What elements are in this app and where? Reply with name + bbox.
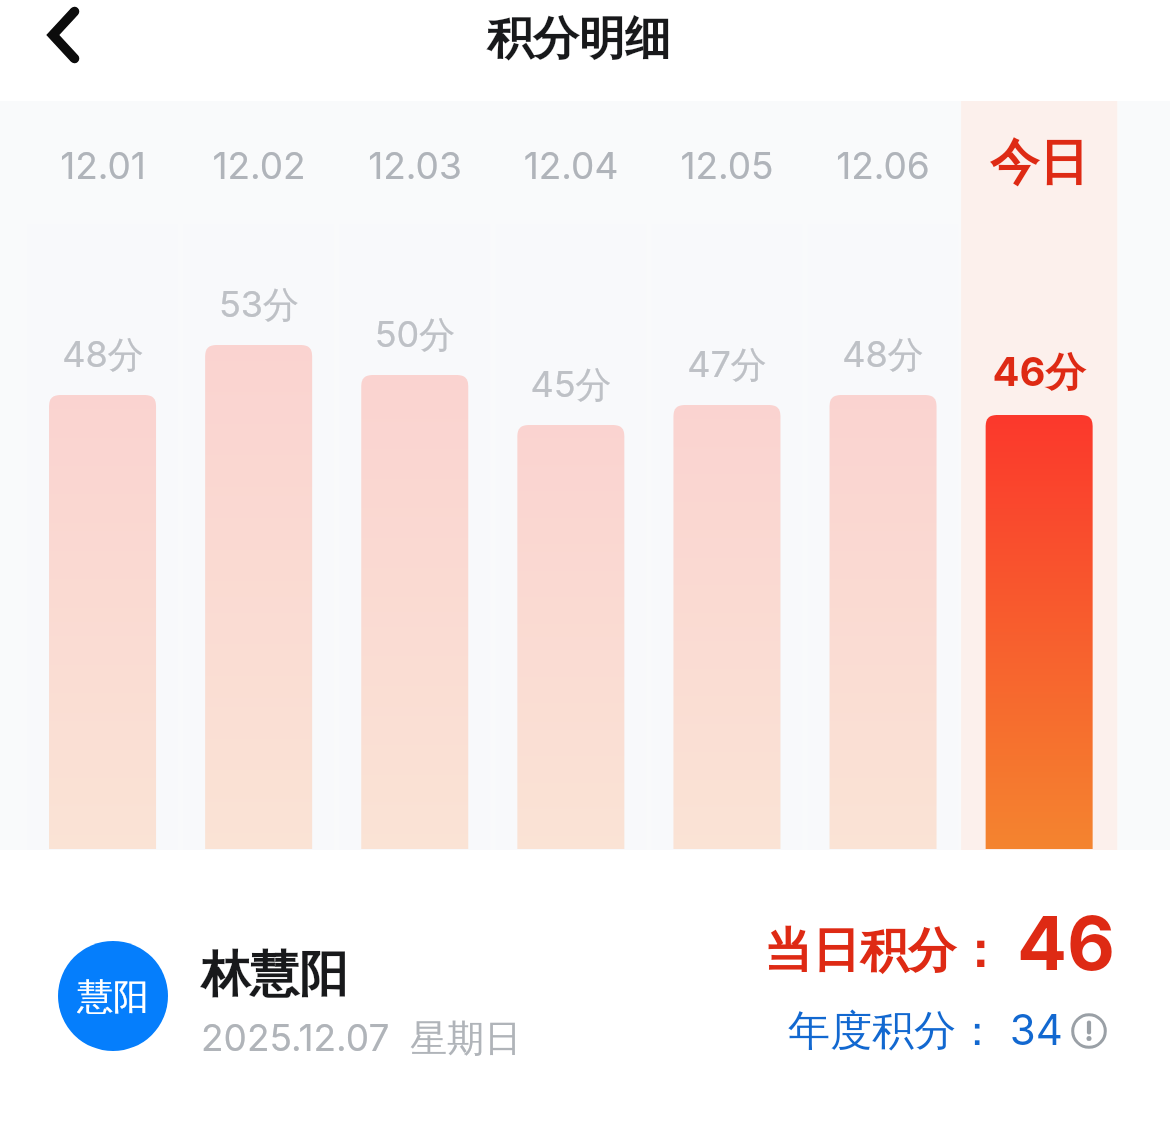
button[interactable]: 慧阳 bbox=[58, 941, 168, 1051]
button[interactable]: 12.02 53分 bbox=[181, 101, 337, 850]
staticText: 2025.12.07 星期日 bbox=[201, 1015, 522, 1062]
staticText: 46分 bbox=[961, 347, 1117, 398]
button[interactable]: 12.03 50分 bbox=[337, 101, 493, 850]
staticText: 慧阳 bbox=[77, 974, 149, 1019]
button[interactable]: 12.04 45分 bbox=[493, 101, 649, 850]
button[interactable]: Back bbox=[18, 0, 108, 70]
button[interactable]: 12.06 48分 bbox=[805, 101, 961, 850]
staticText: 今日 bbox=[961, 132, 1117, 194]
staticText: 年度积分： 34 bbox=[788, 1004, 1063, 1057]
button[interactable]: 当日积分： bbox=[777, 898, 1116, 988]
button[interactable]: 12.05 47分 bbox=[649, 101, 805, 850]
staticText: 12.05 bbox=[649, 143, 805, 188]
staticText: 50分 bbox=[337, 312, 493, 358]
staticText: 12.06 bbox=[805, 143, 961, 188]
staticText: 45分 bbox=[493, 362, 649, 408]
staticText: 积分明细 bbox=[487, 10, 671, 68]
button[interactable]: 12.01 48分 bbox=[25, 101, 181, 850]
staticText: 47分 bbox=[649, 342, 805, 388]
staticText: 48分 bbox=[805, 332, 961, 378]
staticText: 48分 bbox=[25, 332, 181, 378]
staticText: 12.03 bbox=[337, 143, 493, 188]
staticText: 12.02 bbox=[181, 143, 337, 188]
staticText: 12.04 bbox=[493, 143, 649, 188]
staticText: 林慧阳 bbox=[201, 944, 348, 1006]
staticText: 当日积分： bbox=[764, 921, 1004, 981]
button[interactable]: 年度积分： 34 bbox=[788, 1004, 1108, 1057]
staticText: 12.01 bbox=[25, 143, 181, 188]
staticText: 46 bbox=[1017, 898, 1116, 988]
button[interactable]: 今日 46分 bbox=[961, 101, 1117, 850]
staticText: 53分 bbox=[181, 282, 337, 328]
